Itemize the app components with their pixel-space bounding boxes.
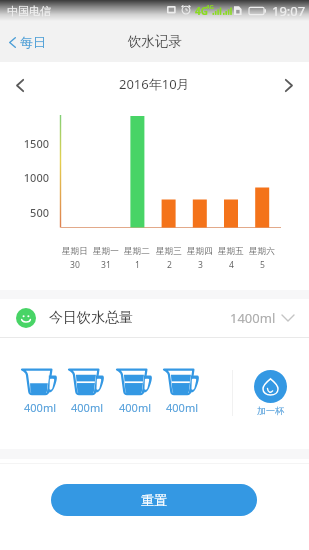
staticText: 星期二 bbox=[124, 246, 150, 257]
staticText: 400ml bbox=[119, 400, 151, 415]
staticText: 400ml bbox=[24, 400, 56, 415]
staticText: 中国电信 bbox=[7, 4, 51, 18]
staticText: 5 bbox=[260, 259, 265, 271]
staticText: 4G bbox=[206, 3, 214, 11]
button[interactable]: 400ml bbox=[158, 363, 206, 417]
button[interactable]: 重置 bbox=[51, 484, 257, 516]
button[interactable]: Previous month bbox=[7, 72, 33, 98]
staticText: 今日饮水总量 bbox=[49, 309, 133, 327]
staticText: 400ml bbox=[166, 400, 198, 415]
staticText: 4G bbox=[195, 4, 208, 18]
staticText: 重置 bbox=[141, 492, 167, 508]
button[interactable]: 每日 bbox=[0, 28, 56, 56]
staticText: 1000 bbox=[0, 170, 49, 185]
button[interactable]: 400ml bbox=[16, 363, 64, 417]
staticText: 星期一 bbox=[93, 246, 119, 257]
staticText: 2 bbox=[167, 259, 172, 271]
button[interactable]: 400ml bbox=[63, 363, 111, 417]
staticText: 加一杯 bbox=[257, 405, 284, 416]
staticText: 1400ml bbox=[230, 309, 276, 327]
button[interactable]: 400ml bbox=[111, 363, 159, 417]
staticText: 星期三 bbox=[156, 246, 182, 257]
button[interactable]: Add a cup bbox=[246, 363, 295, 417]
staticText: 星期六 bbox=[249, 246, 275, 257]
staticText: 饮水记录 bbox=[128, 33, 182, 50]
staticText: 19:07 bbox=[272, 2, 306, 20]
staticText: 星期五 bbox=[218, 246, 244, 257]
button[interactable]: Next month bbox=[276, 72, 302, 98]
staticText: 3 bbox=[198, 259, 203, 271]
staticText: 1500 bbox=[0, 136, 49, 151]
staticText: 31 bbox=[101, 259, 111, 271]
staticText: 每日 bbox=[20, 34, 46, 50]
button[interactable]: 今日饮水总量 bbox=[0, 299, 309, 337]
staticText: 2016年10月 bbox=[119, 75, 190, 93]
staticText: 星期四 bbox=[187, 246, 213, 257]
staticText: 30 bbox=[70, 259, 80, 271]
staticText: 500 bbox=[0, 205, 49, 220]
staticText: 星期日 bbox=[62, 246, 88, 257]
staticText: 4 bbox=[229, 259, 234, 271]
staticText: 1 bbox=[135, 259, 140, 271]
staticText: 400ml bbox=[71, 400, 103, 415]
